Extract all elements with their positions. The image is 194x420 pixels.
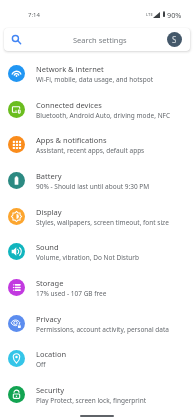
staticText: LTE (146, 12, 153, 18)
staticText: Storage (36, 278, 64, 288)
button[interactable]: Battery (0, 162, 194, 198)
button[interactable]: Search (4, 28, 190, 51)
button[interactable]: Network & internet (0, 55, 194, 91)
button[interactable]: Display (0, 198, 194, 234)
staticText: Bluetooth, Android Auto, driving mode, N… (36, 111, 171, 120)
staticText: Sound (36, 242, 59, 252)
staticText: 90% - Should last until about 9:30 PM (36, 182, 150, 191)
staticText: 7:14 (28, 11, 40, 19)
staticText: Network & internet (36, 64, 104, 74)
staticText: Connected devices (36, 100, 102, 110)
staticText: Display (36, 207, 62, 217)
button[interactable]: Privacy (0, 305, 194, 341)
button[interactable]: Location (0, 340, 194, 376)
button[interactable]: Apps & notifications (0, 126, 194, 162)
staticText: Volume, vibration, Do Not Disturb (36, 253, 140, 262)
staticText: 90% (167, 10, 182, 20)
staticText: Search settings (73, 35, 127, 45)
staticText: Privacy (36, 314, 62, 324)
staticText: Assistant, recent apps, default apps (36, 146, 145, 155)
staticText: S (172, 34, 177, 45)
staticText: Wi-Fi, mobile, data usage, and hotspot (36, 75, 153, 84)
button[interactable]: Connected devices (0, 91, 194, 127)
button[interactable]: Storage (0, 269, 194, 305)
other: Search (12, 35, 21, 44)
staticText: Location (36, 349, 67, 359)
staticText: 17% used - 107 GB free (36, 289, 107, 298)
staticText: Battery (36, 171, 62, 181)
staticText: Security (36, 385, 65, 395)
button[interactable]: Sound (0, 233, 194, 269)
staticText: Styles, wallpapers, screen timeout, font… (36, 218, 169, 227)
button[interactable]: Security (0, 376, 194, 412)
staticText: Play Protect, screen lock, fingerprint (36, 396, 147, 405)
staticText: Off (36, 360, 46, 369)
button[interactable]: Account (167, 32, 182, 47)
staticText: Apps & notifications (36, 135, 107, 145)
staticText: Permissions, account activity, personal … (36, 325, 169, 334)
